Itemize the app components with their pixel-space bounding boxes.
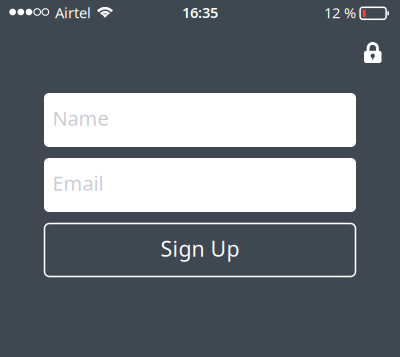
button[interactable]: Sign Up — [44, 223, 356, 277]
staticText: Email — [52, 170, 103, 196]
button[interactable]: Lock — [364, 41, 381, 63]
staticText: Name — [52, 105, 108, 131]
staticText: Sign Up — [160, 234, 239, 263]
button[interactable]: Name — [44, 93, 356, 147]
staticText: 16:35 — [182, 2, 218, 22]
staticText: 12 % — [324, 3, 356, 22]
button[interactable]: Email — [44, 158, 356, 212]
staticText: Airtel — [55, 3, 91, 22]
